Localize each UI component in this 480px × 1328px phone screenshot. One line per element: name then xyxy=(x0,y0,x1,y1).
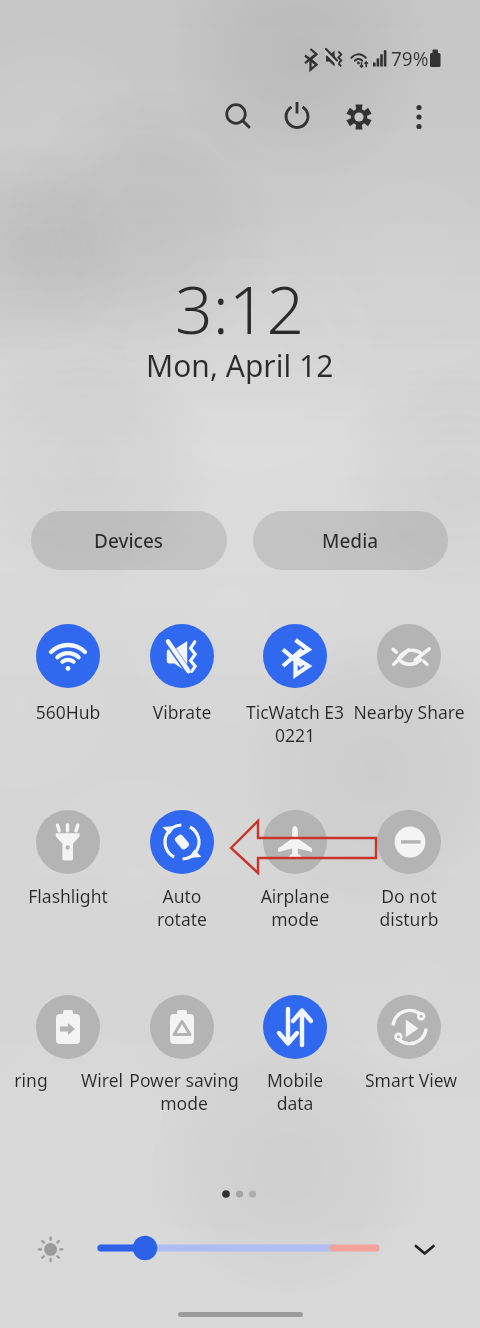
staticText: 560Hub xyxy=(0,700,153,724)
staticText: Devices xyxy=(94,528,164,554)
staticText: 79% xyxy=(391,46,429,72)
button[interactable]: Mobile data xyxy=(263,995,327,1059)
staticText: ring xyxy=(0,1068,116,1092)
staticText: Media xyxy=(322,528,379,554)
staticText: 3:12 xyxy=(175,263,305,353)
button[interactable]: Auto rotate xyxy=(150,810,214,874)
button[interactable]: Airplane mode xyxy=(263,810,327,874)
button[interactable]: Search xyxy=(212,90,266,144)
button[interactable]: Wireless PowerShare xyxy=(150,995,214,1059)
button[interactable]: Devices xyxy=(31,511,227,570)
staticText: Smart View xyxy=(326,1068,480,1092)
button[interactable]: More options xyxy=(392,90,446,144)
button[interactable]: Brightness xyxy=(32,1231,69,1268)
button[interactable]: Nearby Share xyxy=(377,624,441,688)
staticText: Wirel xyxy=(17,1068,187,1092)
staticText: Mobile data xyxy=(210,1068,380,1115)
button[interactable]: Media xyxy=(253,511,448,570)
button[interactable]: Power xyxy=(272,90,326,144)
button[interactable]: Settings xyxy=(332,90,386,144)
staticText: Power saving mode xyxy=(99,1068,269,1115)
button[interactable]: Expand xyxy=(408,1236,442,1262)
button[interactable]: Tethering xyxy=(36,995,100,1059)
button[interactable]: Vibrate xyxy=(150,624,214,688)
button[interactable]: Flashlight xyxy=(36,810,100,874)
button[interactable]: TicWatch E3 0221 xyxy=(263,624,327,688)
button[interactable]: 560Hub xyxy=(36,624,100,688)
staticText: TicWatch E3 0221 xyxy=(210,700,380,747)
staticText: Nearby Share xyxy=(324,700,480,724)
button[interactable]: Brightness slider xyxy=(96,1234,386,1262)
staticText: Auto rotate xyxy=(97,884,267,931)
staticText: Mon, April 12 xyxy=(146,345,334,386)
staticText: Vibrate xyxy=(97,700,267,724)
button[interactable]: Smart View xyxy=(377,995,441,1059)
staticText: Airplane mode xyxy=(210,884,380,931)
button[interactable]: Do not disturb xyxy=(377,810,441,874)
staticText: Do not disturb xyxy=(324,884,480,931)
staticText: Flashlight xyxy=(0,884,153,908)
